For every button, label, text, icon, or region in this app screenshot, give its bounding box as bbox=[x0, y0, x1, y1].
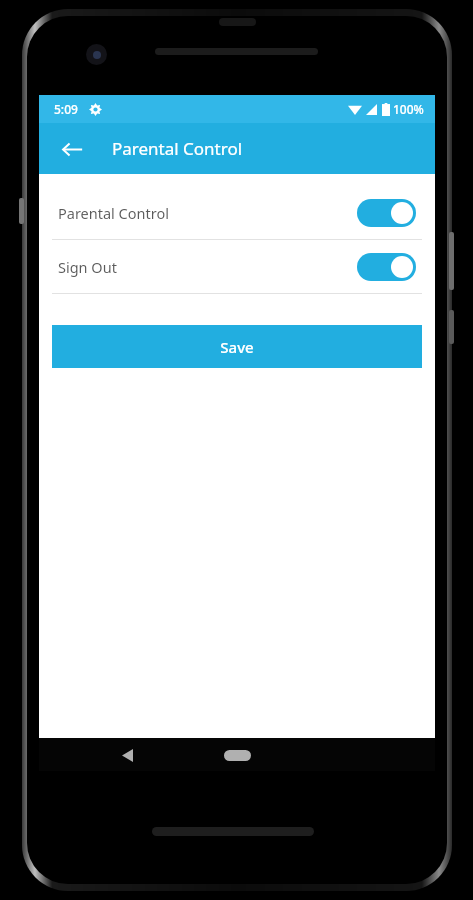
staticText: 5:09 bbox=[54, 101, 78, 117]
staticText: Sign Out bbox=[58, 257, 357, 277]
button[interactable]: Toggle bbox=[357, 253, 416, 281]
button[interactable]: Back bbox=[57, 134, 87, 164]
staticText: Parental Control bbox=[112, 137, 243, 160]
staticText: Parental Control bbox=[58, 203, 357, 223]
button[interactable]: Parental Control bbox=[39, 186, 435, 239]
button[interactable]: Sign Out bbox=[39, 240, 435, 293]
button[interactable]: Save bbox=[52, 325, 422, 368]
button[interactable]: Home bbox=[217, 742, 257, 768]
button[interactable]: Back bbox=[113, 741, 141, 769]
button[interactable]: Toggle bbox=[357, 199, 416, 227]
staticText: Save bbox=[220, 337, 254, 357]
staticText: 100% bbox=[393, 101, 424, 117]
